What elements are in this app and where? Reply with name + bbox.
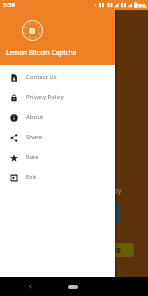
staticText: 5:59: [3, 1, 15, 9]
staticText: Rate: [26, 153, 39, 161]
staticText: Share: [26, 133, 43, 141]
staticText: 79%: [135, 2, 147, 9]
button[interactable]: About: [0, 107, 115, 127]
staticText: Lemon Bitcoin Captcha: [6, 48, 77, 57]
button[interactable]: Contact Us: [0, 67, 115, 87]
button[interactable]: Home: [68, 285, 78, 289]
staticText: ay: [114, 186, 122, 196]
button[interactable]: Rate: [0, 147, 115, 167]
staticText: B: [29, 24, 36, 37]
button[interactable]: Back: [25, 277, 35, 296]
staticText: Privacy Policy: [26, 93, 64, 101]
staticText: About: [26, 113, 44, 121]
staticText: Contact Us: [26, 73, 57, 81]
button[interactable]: SHARE: [96, 243, 134, 257]
button[interactable]: Exit: [0, 167, 115, 187]
staticText: SHARE: [100, 246, 121, 255]
button[interactable]: Privacy Policy: [0, 87, 115, 107]
button[interactable]: Share: [0, 127, 115, 147]
staticText: Exit: [26, 173, 37, 181]
